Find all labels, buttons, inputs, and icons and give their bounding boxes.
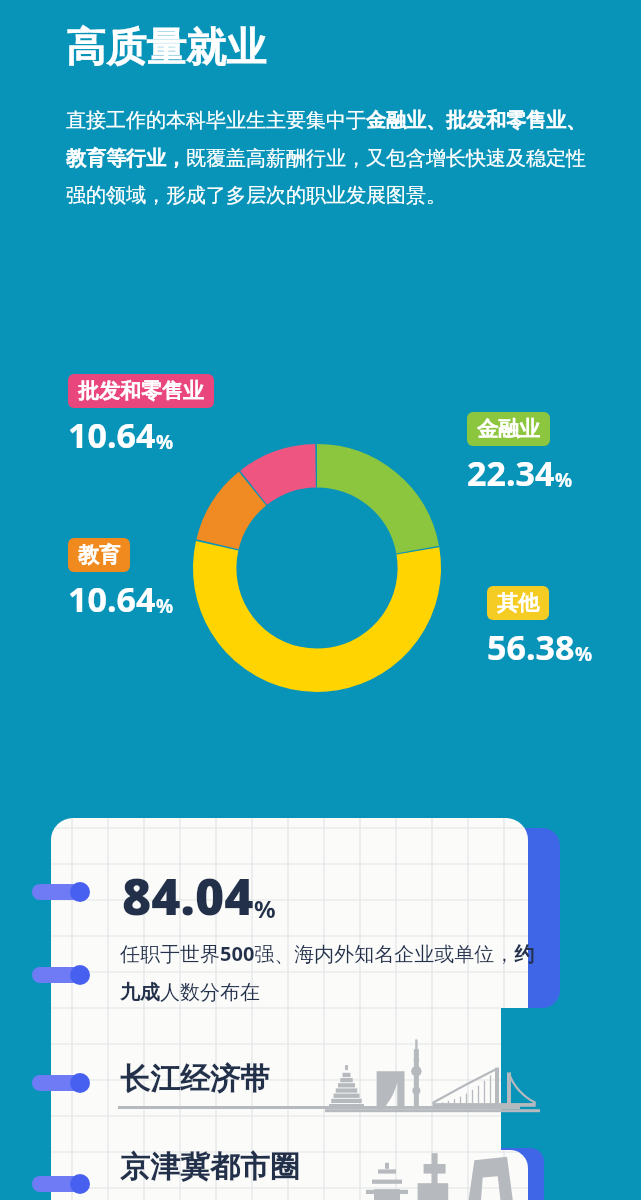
staticText: %: [156, 429, 174, 455]
button[interactable]: 批发和零售业: [68, 374, 214, 408]
staticText: 22.34: [467, 450, 555, 496]
button[interactable]: 其他: [487, 586, 549, 620]
staticText: 批发和零售业: [78, 378, 204, 404]
staticText: %: [254, 892, 276, 925]
staticText: 高质量就业: [66, 22, 266, 72]
staticText: 84.04: [122, 862, 254, 930]
staticText: 10.64: [68, 576, 156, 622]
staticText: 教育: [78, 542, 120, 568]
staticText: 10.64: [68, 412, 156, 458]
staticText: %: [575, 641, 593, 667]
staticText: %: [555, 467, 573, 493]
staticText: 其他: [497, 590, 539, 616]
staticText: 金融业: [477, 416, 540, 442]
staticText: 京津冀都市圈: [120, 1148, 300, 1186]
button[interactable]: 金融业: [467, 412, 550, 446]
button[interactable]: 教育: [68, 538, 130, 572]
staticText: 直接工作的本科毕业生主要集中于金融业、批发和零售业、教育等行业，既覆盖高薪酬行业…: [66, 108, 589, 208]
staticText: 56.38: [487, 624, 575, 670]
staticText: %: [156, 593, 174, 619]
staticText: 长江经济带: [120, 1060, 270, 1098]
staticText: 任职于世界500强、海内外知名企业或单位，约九成人数分布在: [120, 940, 540, 1005]
